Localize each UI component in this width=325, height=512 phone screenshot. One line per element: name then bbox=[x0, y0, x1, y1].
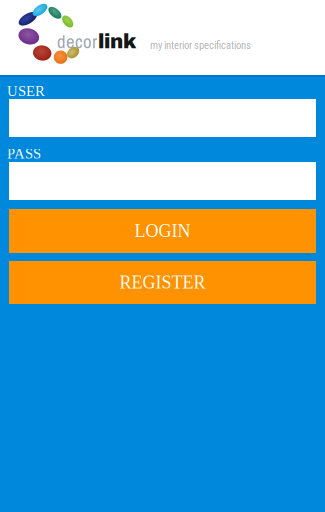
staticText: link bbox=[98, 31, 136, 52]
staticText: decor bbox=[57, 29, 97, 54]
button[interactable]: LOGIN bbox=[9, 209, 316, 253]
staticText: USER bbox=[7, 83, 45, 99]
staticText: PASS bbox=[7, 145, 41, 162]
button[interactable]: REGISTER bbox=[9, 261, 316, 304]
staticText: my interior specifications bbox=[150, 39, 251, 51]
staticText: REGISTER bbox=[119, 272, 205, 292]
staticText: LOGIN bbox=[134, 221, 190, 241]
